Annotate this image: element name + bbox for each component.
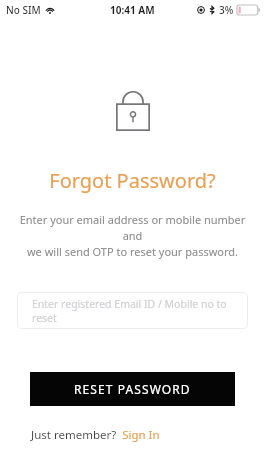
button[interactable]: Enter registered Email ID / Mobile no to…	[17, 292, 248, 329]
staticText: 3%	[219, 3, 234, 17]
button[interactable]: Just remember? Sign In	[31, 427, 160, 443]
button[interactable]: RESET PASSWORD	[30, 372, 235, 406]
staticText: RESET PASSWORD	[74, 381, 191, 397]
staticText: Enter registered Email ID / Mobile no to…	[32, 297, 248, 325]
staticText: Just remember? Sign In	[31, 427, 160, 443]
staticText: Enter your email address or mobile numbe…	[12, 212, 253, 259]
staticText: No SIM	[6, 3, 41, 17]
staticText: 10:41 AM	[110, 3, 155, 17]
staticText: Forgot Password?	[0, 167, 265, 194]
